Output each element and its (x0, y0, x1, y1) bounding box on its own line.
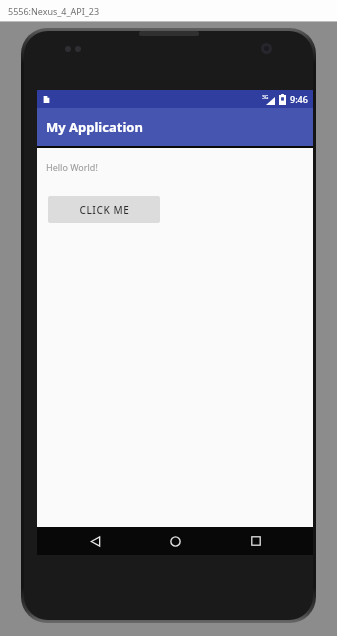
staticText: My Application (46, 118, 143, 136)
staticText: 5556:Nexus_4_API_23 (8, 5, 100, 17)
button[interactable]: Home (152, 527, 198, 555)
button[interactable]: Recent apps (233, 527, 279, 555)
staticText: Hello World! (46, 161, 98, 173)
staticText: 9:46 (290, 93, 308, 105)
button[interactable]: Back (72, 527, 118, 555)
button[interactable]: CLICK ME (48, 196, 160, 223)
staticText: CLICK ME (79, 203, 130, 217)
staticText: 3G (262, 94, 269, 101)
